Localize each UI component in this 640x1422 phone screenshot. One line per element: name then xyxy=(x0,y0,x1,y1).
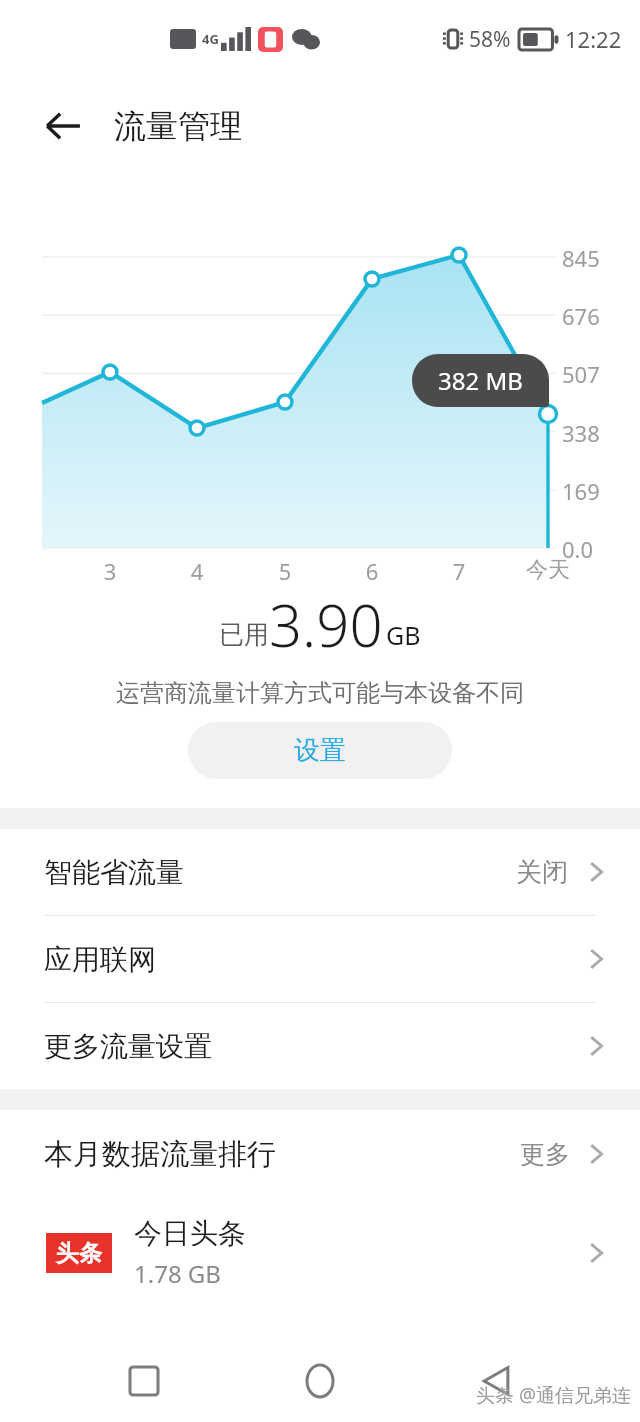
button[interactable]: Back xyxy=(36,99,90,153)
staticText: GB xyxy=(386,618,421,652)
staticText: 今日头条 xyxy=(134,1216,246,1251)
staticText: 6 xyxy=(342,556,402,586)
button[interactable]: Home xyxy=(287,1348,353,1414)
staticText: 1.78 GB xyxy=(134,1257,221,1290)
button[interactable]: 应用联网 xyxy=(0,916,640,1003)
staticText: 3.90 xyxy=(269,585,383,664)
button[interactable]: Back xyxy=(464,1348,530,1414)
staticText: 本月数据流量排行 xyxy=(44,1136,276,1173)
staticText: 流量管理 xyxy=(114,106,242,146)
button[interactable]: 智能省流量 xyxy=(0,829,640,916)
staticText: 今天 xyxy=(518,556,578,584)
staticText: 382 MB xyxy=(438,364,523,397)
staticText: 7 xyxy=(429,556,489,586)
staticText: 关闭 xyxy=(516,856,568,889)
staticText: 338 xyxy=(562,418,600,448)
button[interactable]: 设置 xyxy=(188,722,452,779)
staticText: 12:22 xyxy=(565,24,622,54)
button[interactable]: 本月数据流量排行 xyxy=(0,1110,640,1198)
button[interactable]: Recents xyxy=(111,1348,177,1414)
staticText: 应用联网 xyxy=(44,942,156,977)
staticText: 676 xyxy=(562,301,600,331)
button[interactable]: 头条 xyxy=(0,1198,640,1308)
button[interactable]: 更多流量设置 xyxy=(0,1003,640,1089)
staticText: 58% xyxy=(469,25,511,54)
staticText: 507 xyxy=(562,359,600,389)
staticText: 头条 @通信兄弟连 xyxy=(476,1382,632,1408)
staticText: 5 xyxy=(255,556,315,586)
staticText: 已用 xyxy=(219,619,269,650)
staticText: 169 xyxy=(562,476,600,506)
staticText: 4 xyxy=(167,556,227,586)
staticText: 3 xyxy=(80,556,140,586)
staticText: 设置 xyxy=(294,734,346,767)
staticText: 智能省流量 xyxy=(44,855,184,890)
staticText: 头条 xyxy=(56,1239,102,1268)
staticText: 4G xyxy=(202,30,219,48)
staticText: 0.0 xyxy=(562,534,594,564)
staticText: 更多流量设置 xyxy=(44,1029,212,1064)
staticText: 845 xyxy=(562,243,600,273)
staticText: 更多 xyxy=(520,1139,570,1170)
staticText: 运营商流量计算方式可能与本设备不同 xyxy=(116,678,524,708)
